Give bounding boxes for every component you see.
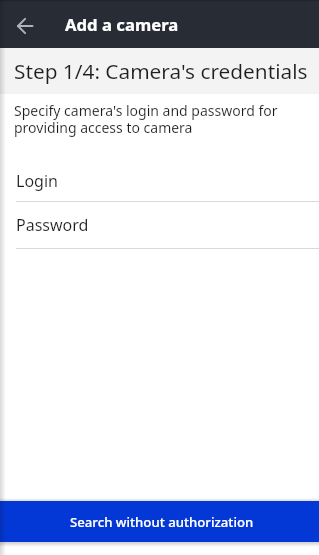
staticText: Specify camera's login and password for … xyxy=(14,101,279,137)
button[interactable]: Search without authorization xyxy=(0,501,319,542)
staticText: Add a camera xyxy=(65,13,179,36)
button[interactable] xyxy=(0,0,48,48)
staticText: Password xyxy=(16,214,89,236)
button[interactable]: Password xyxy=(16,214,319,249)
staticText: Login xyxy=(16,170,58,192)
staticText: Step 1/4: Camera's credentials xyxy=(14,57,308,85)
button[interactable]: Login xyxy=(16,170,319,202)
button[interactable]: Add a camera xyxy=(0,0,319,48)
staticText: Search without authorization xyxy=(70,513,254,531)
